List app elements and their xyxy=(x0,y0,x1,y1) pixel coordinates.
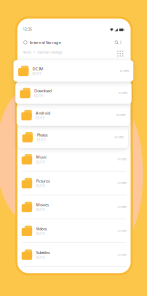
staticText: 10 items xyxy=(117,157,126,161)
staticText: 05/19 xyxy=(36,184,45,188)
staticText: 05/19 xyxy=(36,161,45,164)
staticText: Subtitles xyxy=(36,250,50,255)
button[interactable]: Music xyxy=(17,148,131,171)
staticText: Videos xyxy=(36,226,47,231)
staticText: 05/19 xyxy=(37,138,46,142)
button[interactable]: Download xyxy=(15,82,132,104)
button[interactable]: Pictures xyxy=(17,171,131,195)
staticText: 10 items xyxy=(117,229,126,233)
staticText: 50 items xyxy=(120,69,129,73)
staticText: Internal Storage xyxy=(30,40,61,45)
staticText: Android xyxy=(36,110,50,116)
staticText: 05/19 xyxy=(34,94,43,98)
staticText: DCIM xyxy=(32,66,43,71)
staticText: Pictures xyxy=(36,178,50,184)
button[interactable]: DCIM xyxy=(13,60,133,82)
button[interactable]: Subtitles xyxy=(17,243,131,267)
staticText: Photos xyxy=(37,132,48,138)
staticText: Music xyxy=(36,154,47,160)
staticText: 05/19 xyxy=(36,232,45,236)
button[interactable]: Photos xyxy=(18,126,128,148)
staticText: 05/19 xyxy=(36,256,45,260)
button[interactable]: Videos xyxy=(17,219,131,243)
staticText: 50 items xyxy=(116,113,125,117)
staticText: 05/19 xyxy=(32,72,41,76)
staticText: 10 items xyxy=(118,91,127,95)
button[interactable]: Movies xyxy=(17,195,131,219)
staticText: 10 items xyxy=(117,253,126,256)
button[interactable]: Grid view xyxy=(117,51,123,57)
staticText: 05/19 xyxy=(36,208,45,212)
staticText: 05/19 xyxy=(36,116,45,120)
staticText: 12:35 xyxy=(23,27,32,31)
button[interactable]: More options xyxy=(120,41,121,44)
staticText: 10 items xyxy=(117,181,126,185)
button[interactable]: Android xyxy=(17,104,130,126)
button[interactable]: Search xyxy=(115,41,118,44)
staticText: Movies xyxy=(36,202,49,207)
staticText: 50 items xyxy=(114,135,123,139)
staticText: 10 items xyxy=(117,205,126,209)
button[interactable]: Internal Storage xyxy=(24,40,61,45)
staticText: Home > Internal Storage xyxy=(22,50,62,55)
staticText: Download xyxy=(34,88,51,93)
